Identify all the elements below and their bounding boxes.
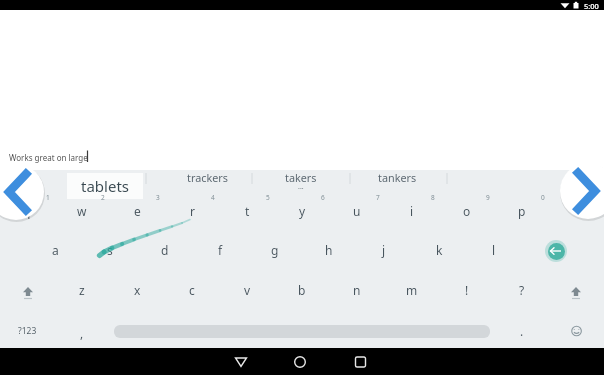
staticText: v [244,282,251,298]
staticText: x [134,282,141,298]
button[interactable]: tablets [67,173,143,199]
button[interactable]: trackers [157,166,257,188]
staticText: n [353,282,361,298]
staticText: tankers [378,170,417,185]
staticText: 6 [321,193,325,202]
button[interactable] [285,348,315,375]
staticText: t [245,203,250,219]
staticText: ?123 [18,325,37,337]
staticText: ? [519,282,525,298]
staticText: . [520,323,524,339]
staticText: 0 [541,193,545,202]
staticText: 9 [486,193,490,202]
staticText: w [77,203,87,219]
staticText: b [298,282,306,298]
staticText: ! [465,282,469,298]
staticText: y [299,203,306,219]
staticText: r [190,203,195,219]
staticText: takers [285,170,317,185]
button[interactable] [345,348,375,375]
button[interactable] [560,163,604,219]
staticText: Works great on large [9,152,88,163]
button[interactable] [0,164,44,220]
staticText: 5 [266,193,270,202]
staticText: 1 [46,193,50,202]
staticText: p [518,203,526,219]
staticText: s [107,242,113,258]
staticText: 3 [156,193,160,202]
staticText: d [161,242,169,258]
staticText: 8 [431,193,435,202]
staticText: ... [298,182,304,192]
staticText: 2 [101,193,105,202]
staticText: i [410,203,414,219]
button[interactable]: takers [258,166,344,188]
staticText: 4 [211,193,215,202]
staticText: z [79,282,85,298]
staticText: h [325,242,333,258]
staticText: k [436,242,443,258]
button[interactable] [226,348,256,375]
staticText: q [23,203,31,219]
staticText: m [406,282,418,298]
staticText: j [382,242,386,258]
staticText: tablets [81,176,129,196]
staticText: 7 [376,193,380,202]
staticText: c [189,282,195,298]
button[interactable] [548,243,565,260]
staticText: , [80,325,84,341]
button[interactable]: tankers [352,166,442,188]
staticText: g [271,242,279,258]
staticText: trackers [187,170,228,185]
staticText: f [218,242,223,258]
staticText: a [52,242,59,258]
staticText: e [134,203,141,219]
staticText: o [463,203,471,219]
staticText: u [353,203,361,219]
staticText: 5:00 [584,1,599,11]
staticText: l [492,242,496,258]
